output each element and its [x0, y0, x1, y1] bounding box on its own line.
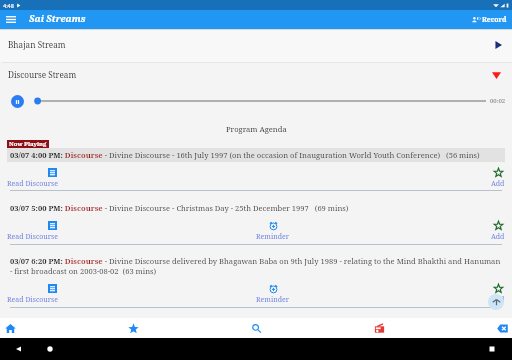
button[interactable]: Search	[236, 318, 276, 338]
staticText: Discourse Stream	[8, 69, 77, 80]
staticText: 4:48	[3, 2, 14, 9]
button[interactable]: 03/07 5:00 PM: Discourse - Divine Discou…	[10, 203, 349, 213]
button[interactable]: 03/07 6:20 PM: Discourse - Divine Discou…	[10, 256, 502, 276]
button[interactable]: Bhajan Stream	[0, 30, 512, 62]
staticText: Now Playing	[9, 140, 47, 148]
button[interactable]: Read Discourse	[7, 284, 59, 305]
button[interactable]: Add	[491, 221, 505, 242]
button[interactable]: Read Discourse	[7, 168, 59, 189]
button[interactable]: Add	[491, 168, 505, 189]
staticText: Record	[482, 15, 507, 24]
staticText: Program Agenda	[226, 124, 287, 134]
staticText: Read Discourse	[7, 295, 59, 305]
button[interactable]: Scroll to top	[488, 294, 504, 310]
button[interactable]: Home	[0, 318, 30, 338]
staticText: 00:02	[490, 97, 506, 105]
staticText: Add	[491, 232, 505, 242]
button[interactable]: Record	[472, 15, 507, 24]
button[interactable]: Add	[491, 284, 505, 305]
staticText: Add	[491, 295, 505, 305]
button[interactable]: Reminder	[256, 221, 290, 242]
button[interactable]: Read Discourse	[7, 221, 59, 242]
button[interactable]: Discourse Stream	[0, 63, 512, 85]
staticText: Read Discourse	[7, 179, 59, 189]
button[interactable]: Favourites	[113, 318, 153, 338]
staticText: Read Discourse	[7, 232, 59, 242]
button[interactable]: Radio	[359, 318, 399, 338]
staticText: Reminder	[256, 232, 290, 242]
button[interactable]: Close	[482, 318, 512, 338]
staticText: Sai Streams	[29, 12, 86, 25]
button[interactable]: Reminder	[256, 284, 290, 305]
staticText: Bhajan Stream	[8, 39, 66, 50]
button[interactable]: Pause	[11, 95, 24, 108]
staticText: Add	[491, 179, 505, 189]
button[interactable]: Open navigation menu	[2, 11, 20, 29]
staticText: 03/07 4:00 PM: Discourse - Divine Discou…	[10, 150, 480, 160]
staticText: Reminder	[256, 295, 290, 305]
button[interactable]: 03/07 4:00 PM: Discourse - Divine Discou…	[7, 148, 505, 162]
